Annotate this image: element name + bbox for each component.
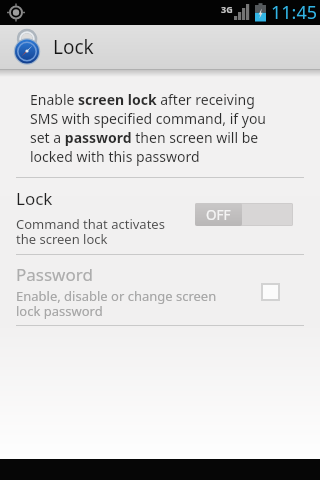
staticText: Enable, disable or change screen lock pa…: [16, 287, 217, 320]
staticText: Lock: [53, 34, 94, 60]
staticText: Password: [16, 263, 93, 286]
button[interactable]: Lock: [0, 178, 320, 254]
button[interactable]: [262, 284, 279, 300]
button[interactable]: Lock: [0, 25, 320, 69]
staticText: Enable screen lock after receiving SMS w…: [30, 90, 266, 166]
button[interactable]: OFF: [195, 203, 293, 226]
staticText: 3G: [221, 3, 233, 15]
button[interactable]: Password: [0, 255, 320, 325]
staticText: OFF: [206, 206, 231, 224]
staticText: Command that activates the screen lock: [16, 215, 165, 248]
staticText: 11:45: [271, 0, 318, 25]
staticText: Lock: [16, 187, 53, 210]
